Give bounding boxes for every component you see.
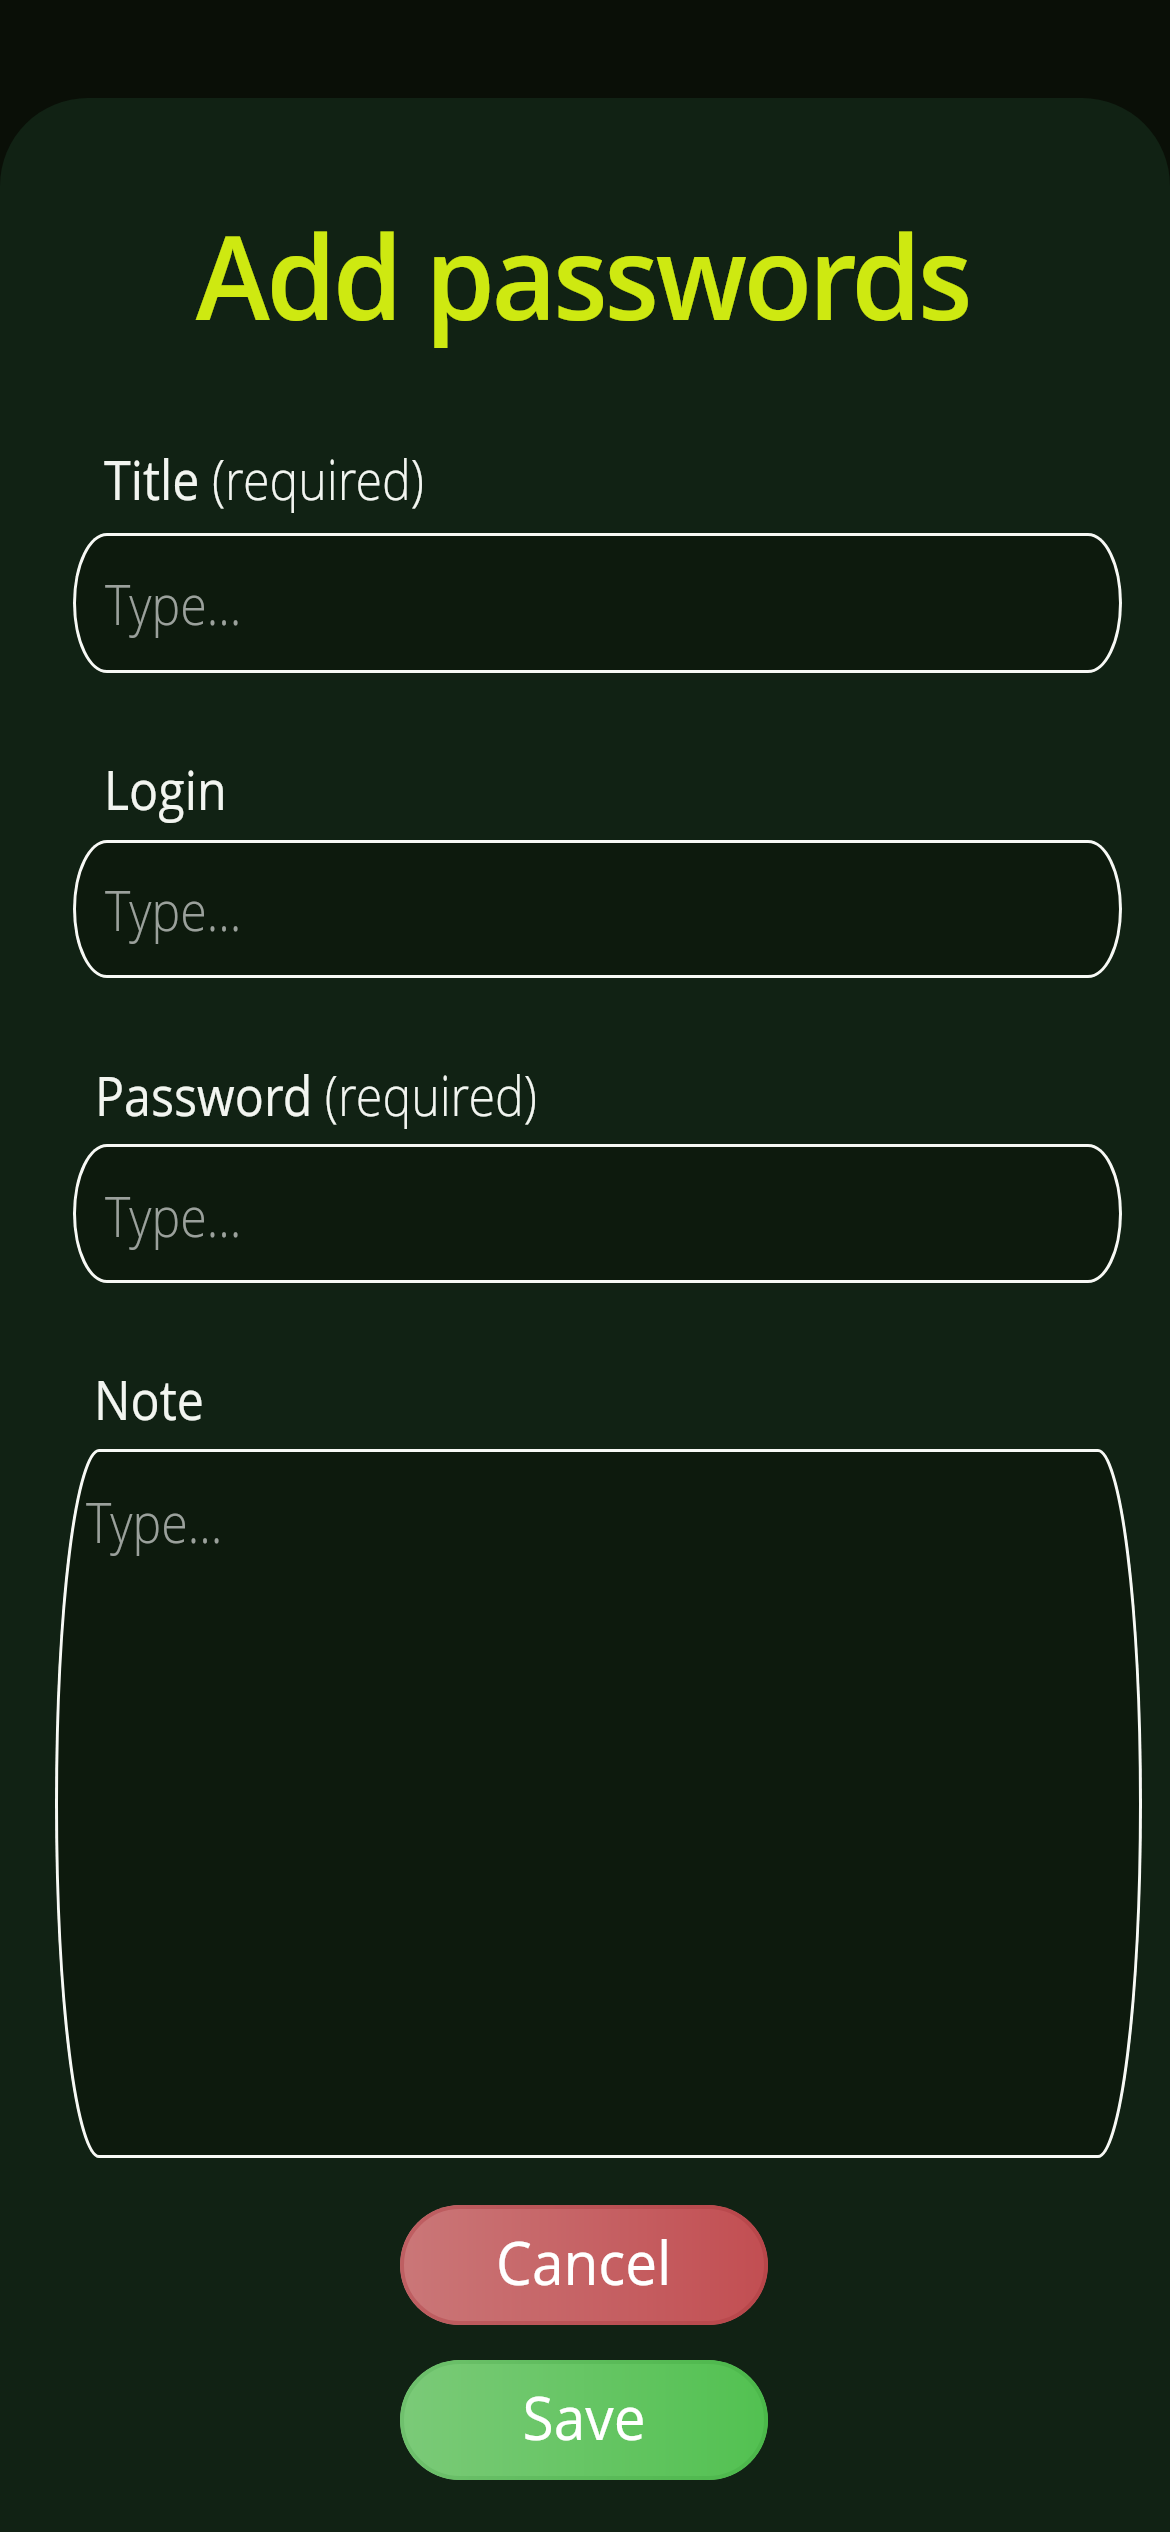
staticText: Note xyxy=(94,1361,204,1436)
staticText: Login xyxy=(104,751,227,826)
button[interactable]: Save xyxy=(400,2360,768,2480)
staticText: Add passwords xyxy=(196,195,970,354)
staticText: Cancel xyxy=(496,2221,672,2303)
staticText: Type… xyxy=(105,566,242,641)
staticText: Save xyxy=(523,2376,646,2458)
button[interactable]: Cancel xyxy=(400,2205,768,2325)
staticText: Type… xyxy=(105,1178,242,1253)
button[interactable]: Type… xyxy=(55,1449,1142,2158)
staticText: Title (required) xyxy=(104,441,425,516)
staticText: Password (required) xyxy=(95,1057,537,1132)
button[interactable]: Type… xyxy=(73,1144,1122,1283)
staticText: Type… xyxy=(105,872,242,947)
button[interactable]: Type… xyxy=(73,533,1122,673)
staticText: Type… xyxy=(86,1484,223,1559)
button[interactable]: Type… xyxy=(73,840,1122,978)
